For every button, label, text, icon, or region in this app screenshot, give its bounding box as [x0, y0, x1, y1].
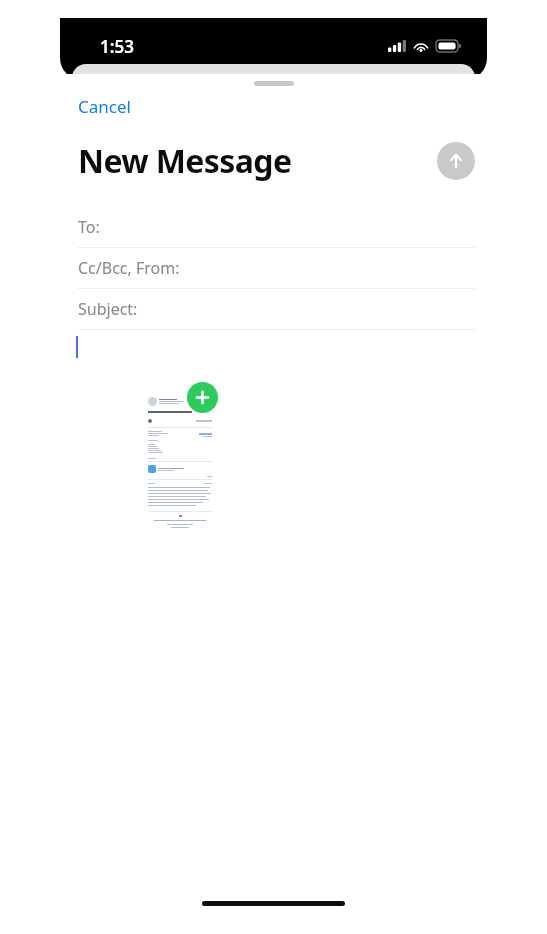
button[interactable]: Add attachment — [187, 382, 218, 413]
staticText: Cancel — [78, 95, 131, 118]
button[interactable]: Subject: — [0, 289, 547, 330]
staticText: New Message — [78, 139, 292, 183]
button[interactable]: Send — [437, 142, 475, 180]
staticText: Subject: — [78, 298, 138, 320]
staticText: Cc/Bcc, From: — [78, 257, 180, 279]
button[interactable]: Attachment preview — [144, 393, 216, 560]
staticText: To: — [78, 216, 100, 238]
button[interactable]: Cancel — [64, 90, 145, 123]
staticText: 1:53 — [100, 35, 134, 58]
button[interactable] — [0, 330, 547, 366]
button[interactable]: Cc/Bcc, From: — [0, 248, 547, 289]
button[interactable]: To: — [0, 207, 547, 248]
